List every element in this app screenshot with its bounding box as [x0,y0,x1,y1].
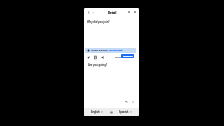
button[interactable]: Delete [132,9,138,15]
button[interactable]: Reply [124,99,129,104]
button[interactable]: Spanish [119,109,132,114]
staticText: Spanish [119,110,129,113]
staticText: Decline [115,56,123,59]
staticText: Are you going? [88,63,108,67]
staticText: Detail [108,11,117,15]
button[interactable]: Archive [126,9,132,15]
staticText: Translate [123,55,133,58]
button[interactable]: English [91,109,103,114]
button[interactable]: Share [100,55,105,60]
button[interactable]: More options [130,99,135,104]
staticText: Spanish [119,110,129,113]
staticText: Why did you join? [87,20,110,24]
staticText: Are you going? [88,63,108,67]
button[interactable]: Translate [121,54,134,58]
button[interactable]: Copy text [93,55,98,60]
button[interactable]: Reply to message [86,55,91,60]
staticText: English [91,110,100,113]
staticText: Always translate [91,49,109,52]
button[interactable]: Always translate [85,48,136,53]
staticText: Translate [123,55,133,58]
staticText: Always translate [91,49,109,52]
button[interactable]: Swap languages [108,109,114,115]
staticText: English [91,110,100,113]
staticText: this message [109,49,123,52]
staticText: Decline [115,56,123,59]
staticText: Detail [108,11,117,15]
button[interactable]: Decline [115,56,123,59]
staticText: Why did you join? [87,20,110,24]
button[interactable]: Back [85,9,91,15]
staticText: this message [109,49,123,52]
button[interactable]: Forward [90,9,96,15]
